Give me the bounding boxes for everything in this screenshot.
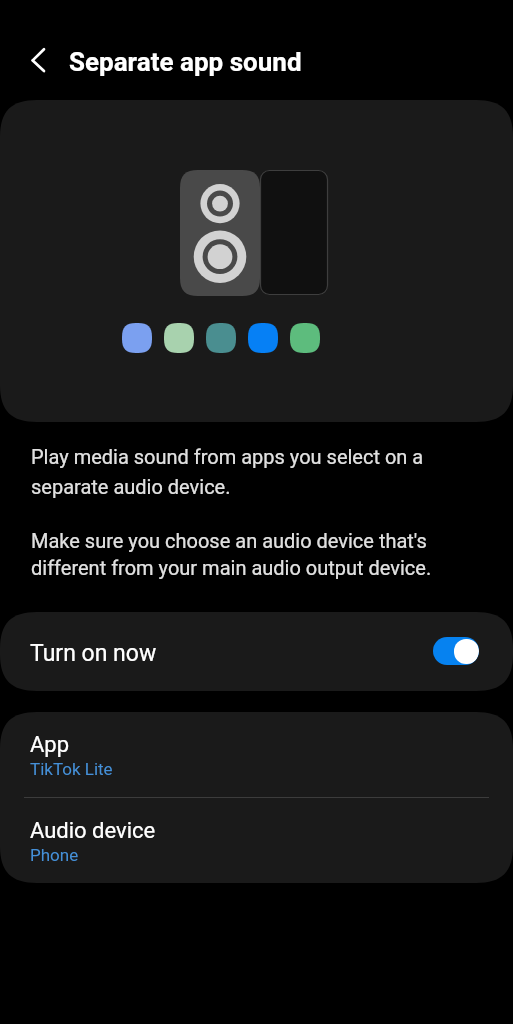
staticText: Turn on now bbox=[30, 640, 157, 667]
button[interactable]: Turn on now bbox=[0, 612, 513, 691]
button[interactable]: Audio device bbox=[0, 798, 513, 883]
staticText: TikTok Lite bbox=[30, 759, 113, 779]
staticText: Separate app sound bbox=[69, 47, 302, 77]
staticText: Audio device bbox=[30, 818, 156, 844]
staticText: App bbox=[30, 732, 70, 758]
button[interactable]: App bbox=[0, 712, 513, 797]
staticText: Make sure you choose an audio device tha… bbox=[31, 529, 432, 580]
button[interactable]: Navigate up bbox=[19, 45, 49, 75]
staticText: Phone bbox=[30, 845, 79, 865]
button[interactable]: Turn on now bbox=[433, 637, 479, 665]
staticText: Play media sound from apps you select on… bbox=[31, 445, 424, 499]
